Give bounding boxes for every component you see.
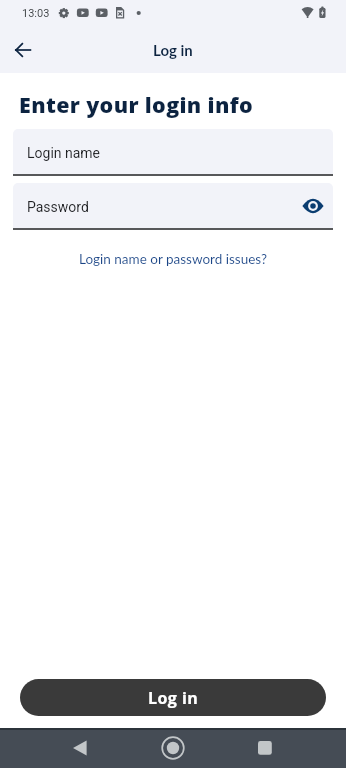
staticText: Password <box>27 199 89 215</box>
button[interactable]: Recent apps <box>241 728 289 768</box>
button[interactable]: Home <box>149 728 197 768</box>
button[interactable]: Log in <box>20 679 326 716</box>
button[interactable]: Login name <box>13 129 333 174</box>
staticText: Login name <box>27 145 101 161</box>
staticText: Log in <box>148 687 199 709</box>
button[interactable]: Show password <box>301 194 325 218</box>
button[interactable]: Login name or password issues? <box>71 247 276 271</box>
button[interactable]: Back <box>7 34 39 66</box>
staticText: Log in <box>153 41 193 59</box>
button[interactable]: Back <box>56 728 104 768</box>
staticText: Enter your login info <box>19 90 253 119</box>
staticText: 13:03 <box>22 7 50 20</box>
button[interactable]: Password <box>13 183 333 228</box>
